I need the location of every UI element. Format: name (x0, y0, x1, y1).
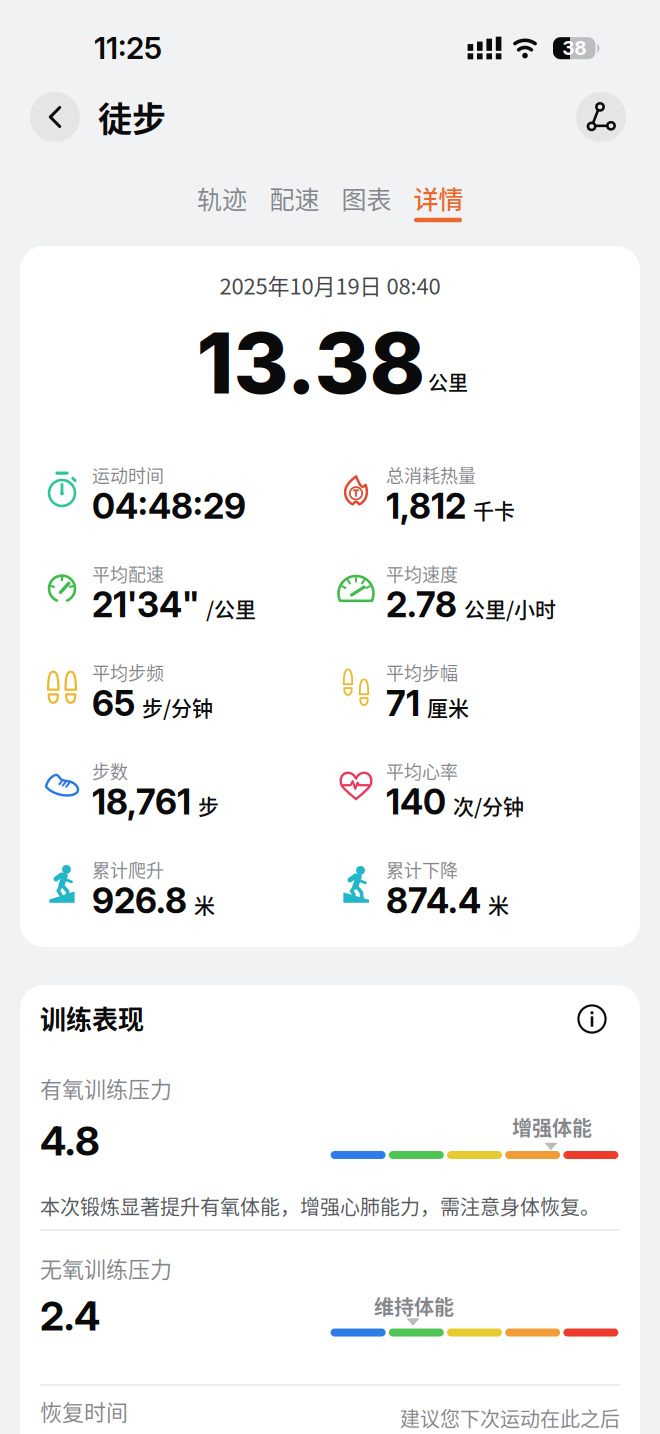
staticText: 无氧训练压力 (40, 1252, 172, 1284)
staticText: 平均步频 (92, 659, 164, 685)
staticText: 总消耗热量 (386, 462, 476, 488)
staticText: 平均速度 (386, 561, 458, 587)
button[interactable]: Back (30, 92, 80, 142)
staticText: 步 (198, 790, 219, 821)
staticText: 平均心率 (386, 758, 458, 784)
staticText: 38 (562, 37, 586, 60)
staticText: 2025年10月19日 08:40 (219, 269, 440, 301)
staticText: 1,812 (386, 485, 466, 527)
staticText: 累计爬升 (92, 856, 164, 882)
staticText: 公里 (428, 367, 468, 396)
staticText: 图表 (341, 180, 391, 216)
staticText: 详情 (413, 180, 463, 216)
staticText: 平均步幅 (386, 659, 458, 685)
staticText: 65 (92, 682, 135, 724)
staticText: 徒步 (98, 92, 166, 142)
staticText: 次/分钟 (453, 790, 524, 821)
staticText: 训练表现 (40, 999, 144, 1037)
staticText: 874.4 (386, 879, 481, 921)
staticText: 本次锻炼显著提升有氧体能，增强心肺能力，需注意身体恢复。 (40, 1191, 600, 1220)
staticText: 维持体能 (374, 1291, 454, 1320)
staticText: 11:25 (94, 30, 162, 66)
button[interactable]: Info (577, 1004, 607, 1034)
staticText: 配速 (269, 180, 319, 216)
staticText: 2.4 (40, 1292, 100, 1340)
staticText: 米 (194, 889, 215, 919)
staticText: 轨迹 (197, 180, 247, 216)
staticText: /公里 (206, 593, 256, 623)
staticText: 运动时间 (92, 462, 164, 488)
staticText: 有氧训练压力 (40, 1072, 172, 1104)
staticText: 千卡 (473, 494, 515, 525)
staticText: 21'34" (92, 583, 199, 626)
staticText: 140 (386, 781, 446, 823)
staticText: 增强体能 (512, 1112, 592, 1141)
staticText: 厘米 (427, 692, 469, 722)
staticText: 步/分钟 (142, 692, 213, 722)
staticText: 公里/小时 (464, 593, 556, 623)
staticText: 13.38 (196, 312, 425, 414)
staticText: 2.78 (386, 583, 457, 626)
staticText: 4.8 (40, 1117, 100, 1165)
button[interactable]: Share (576, 92, 626, 142)
staticText: 米 (488, 889, 509, 919)
staticText: 926.8 (92, 879, 187, 921)
staticText: 恢复时间 (40, 1395, 128, 1427)
staticText: 建议您下次运动在此之后 (400, 1403, 620, 1432)
button[interactable]: 轨迹 (182, 178, 262, 218)
staticText: 累计下降 (386, 856, 458, 882)
staticText: 18,761 (92, 781, 191, 823)
button[interactable]: 配速 (254, 178, 334, 218)
staticText: 71 (386, 682, 420, 724)
button[interactable]: 图表 (326, 178, 406, 218)
button[interactable]: 详情 (398, 178, 478, 218)
staticText: 04:48:29 (92, 485, 246, 527)
staticText: 步数 (92, 758, 128, 784)
staticText: 平均配速 (92, 561, 164, 587)
